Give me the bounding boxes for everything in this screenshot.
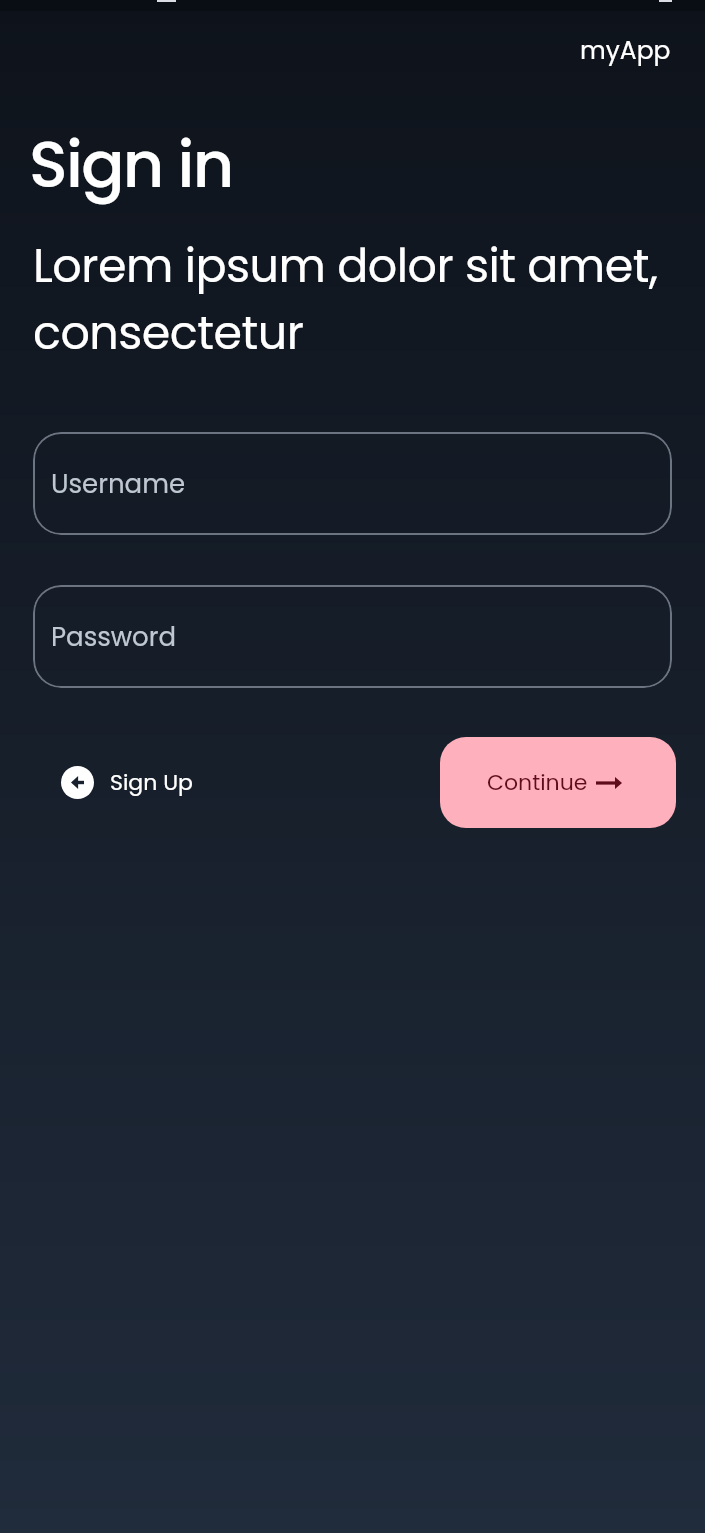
staticText: Sign Up [110,767,193,798]
button[interactable]: Continue [440,737,676,828]
button[interactable]: Back [33,756,203,809]
staticText: Username [51,466,186,502]
staticText: Continue [487,767,588,798]
button[interactable]: Username [33,432,672,535]
button[interactable]: myApp [580,33,671,68]
staticText: Lorem ipsum dolor sit amet, consectetur [33,234,670,365]
button[interactable]: Password [33,585,672,688]
staticText: Sign in [29,120,233,210]
other: Back [61,766,94,799]
staticText: Password [51,619,177,655]
